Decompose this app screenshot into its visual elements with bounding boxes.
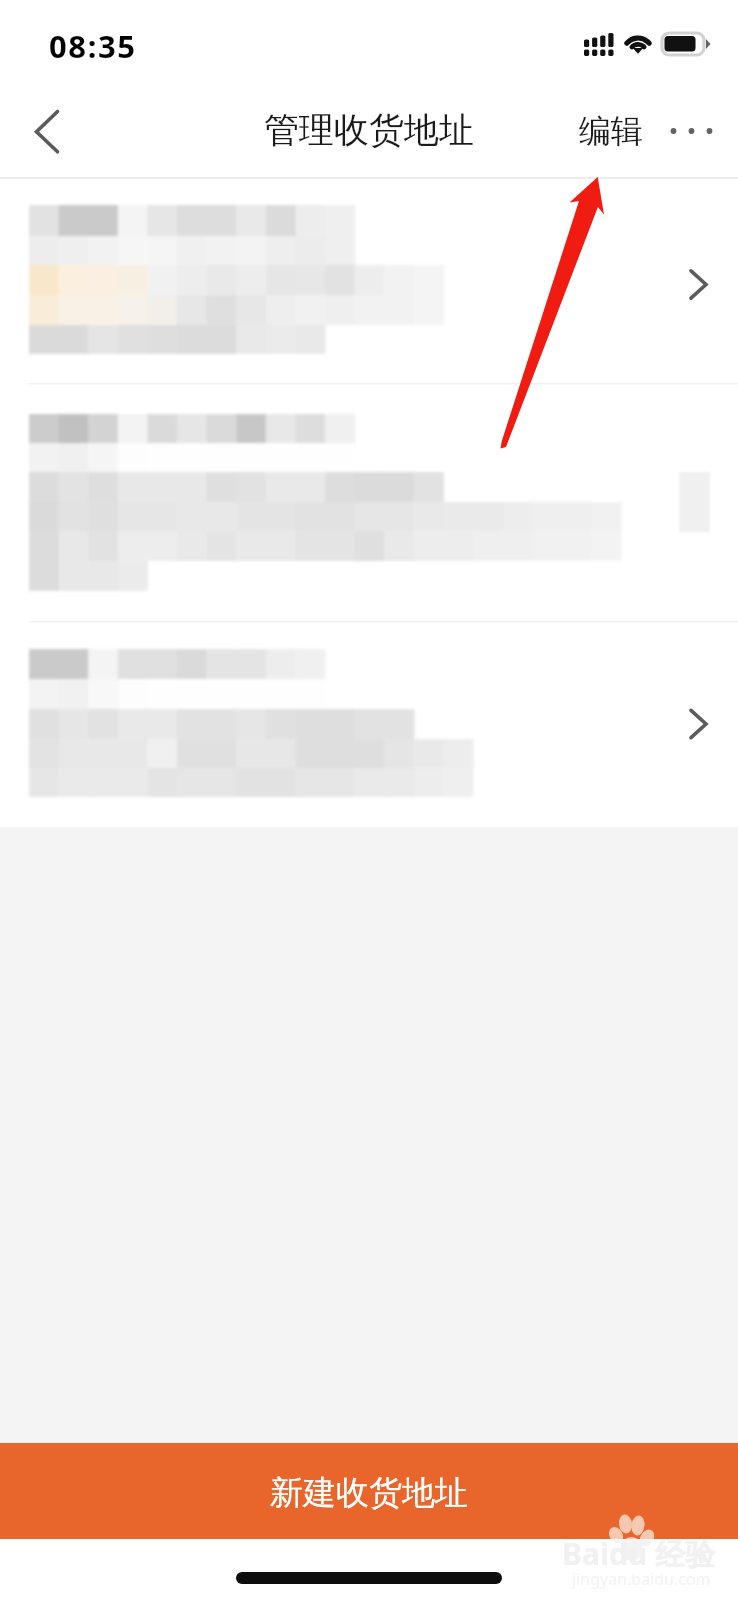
button[interactable]: More options [666,95,738,167]
staticText: 新建收货地址 [270,1472,468,1514]
staticText: 编辑 [579,111,643,151]
button[interactable]: 编辑 [567,95,655,167]
staticText: Baidu 经验 [562,1533,716,1574]
button[interactable]: Back [0,84,96,177]
button[interactable] [0,622,738,827]
staticText: 管理收货地址 [264,108,474,152]
button[interactable] [0,179,738,384]
button[interactable]: 新建收货地址 [0,1443,738,1539]
button[interactable] [0,384,738,622]
staticText: jingyan.baidu.com [572,1568,711,1590]
staticText: 08:35 [49,25,137,67]
